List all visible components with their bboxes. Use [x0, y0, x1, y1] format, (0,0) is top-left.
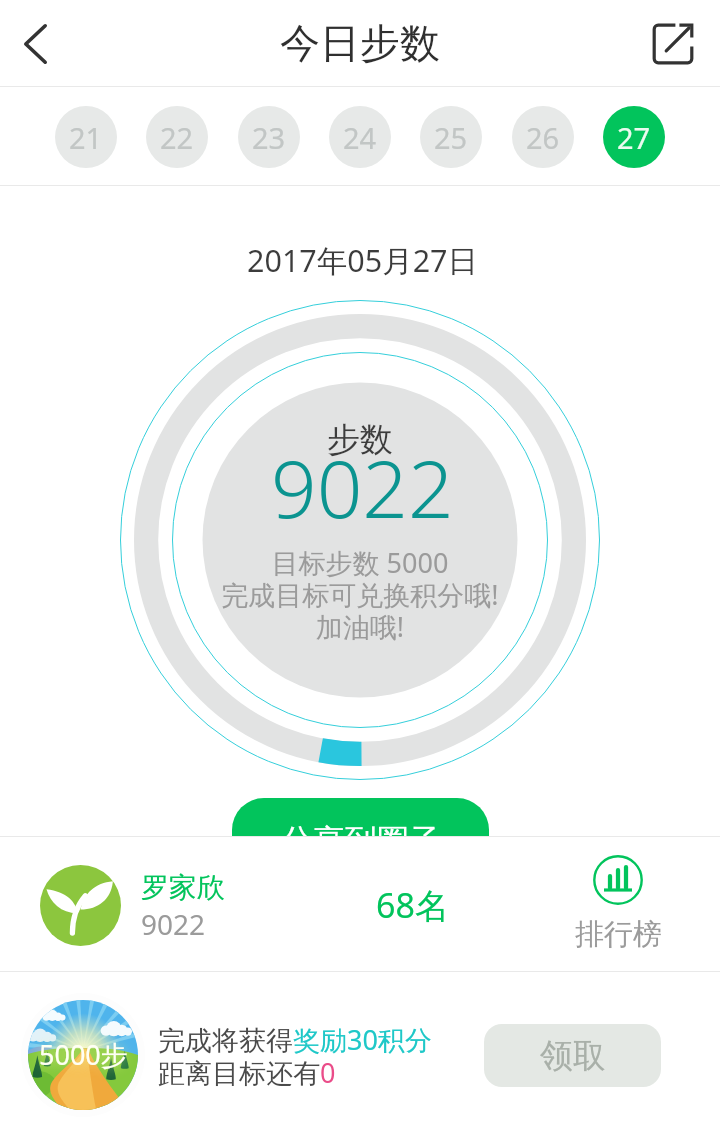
button[interactable]: 分享到圈子 — [232, 798, 489, 870]
staticText: 领取 — [540, 1035, 606, 1077]
staticText: 分享到圈子 — [281, 821, 441, 861]
button[interactable]: 罗家欣 — [141, 870, 311, 943]
button[interactable]: Back — [0, 0, 87, 87]
staticText: 25 — [434, 118, 468, 157]
staticText: 2017年05月27日 — [247, 239, 479, 281]
staticText: 9022 — [271, 432, 454, 541]
button[interactable]: 25 — [420, 106, 482, 168]
button[interactable]: 24 — [329, 106, 391, 168]
button[interactable]: 27 — [603, 106, 665, 168]
staticText: 目标步数 5000 完成目标可兑换积分哦! 加油哦! — [221, 544, 499, 645]
staticText: 23 — [252, 118, 286, 157]
staticText: 5000步 — [39, 1036, 128, 1073]
staticText: 罗家欣 — [141, 870, 225, 905]
staticText: 21 — [69, 118, 103, 157]
staticText: 27 — [617, 118, 651, 157]
button[interactable]: 排行榜 — [558, 845, 678, 965]
staticText: 24 — [343, 118, 377, 157]
button[interactable]: 23 — [238, 106, 300, 168]
staticText: 步数 — [327, 419, 393, 461]
staticText: 26 — [526, 118, 560, 157]
staticText: 距离目标还有0 — [158, 1054, 336, 1091]
button[interactable]: 22 — [146, 106, 208, 168]
staticText: 68名 — [376, 882, 449, 928]
button[interactable]: 26 — [512, 106, 574, 168]
staticText: 排行榜 — [575, 916, 662, 953]
staticText: 9022 — [141, 905, 206, 943]
staticText: 完成将获得奖励30积分 — [158, 1021, 432, 1058]
button[interactable]: 21 — [55, 106, 117, 168]
button[interactable]: Share — [629, 0, 716, 87]
button[interactable]: 领取 — [484, 1024, 661, 1087]
staticText: 22 — [160, 118, 194, 157]
staticText: 今日步数 — [280, 18, 440, 68]
